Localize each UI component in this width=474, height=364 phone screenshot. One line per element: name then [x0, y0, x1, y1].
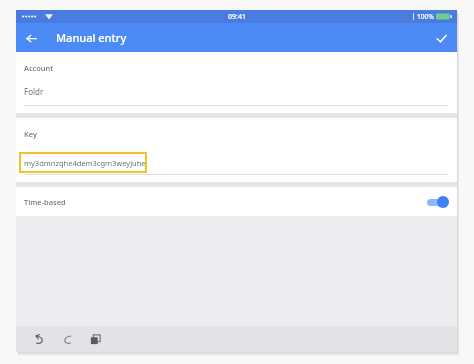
- button[interactable]: Account: [16, 52, 457, 113]
- button[interactable]: Time-based: [16, 187, 457, 216]
- button[interactable]: Home: [56, 328, 78, 350]
- button[interactable]: Back: [28, 328, 50, 350]
- staticText: my3dmnzqhe4dem3cgm3weyjuhe: [24, 158, 146, 168]
- staticText: 09:41: [228, 12, 246, 22]
- button[interactable]: Key: [16, 118, 457, 182]
- staticText: Foldr: [24, 86, 44, 97]
- button[interactable]: Back: [20, 27, 42, 49]
- button[interactable]: Recent apps: [84, 328, 106, 350]
- staticText: Time-based: [24, 197, 66, 207]
- staticText: Manual entry: [56, 30, 127, 45]
- staticText: Key: [24, 129, 37, 139]
- button[interactable]: Save: [430, 27, 452, 49]
- staticText: Account: [24, 63, 54, 73]
- staticText: 100%: [417, 12, 434, 21]
